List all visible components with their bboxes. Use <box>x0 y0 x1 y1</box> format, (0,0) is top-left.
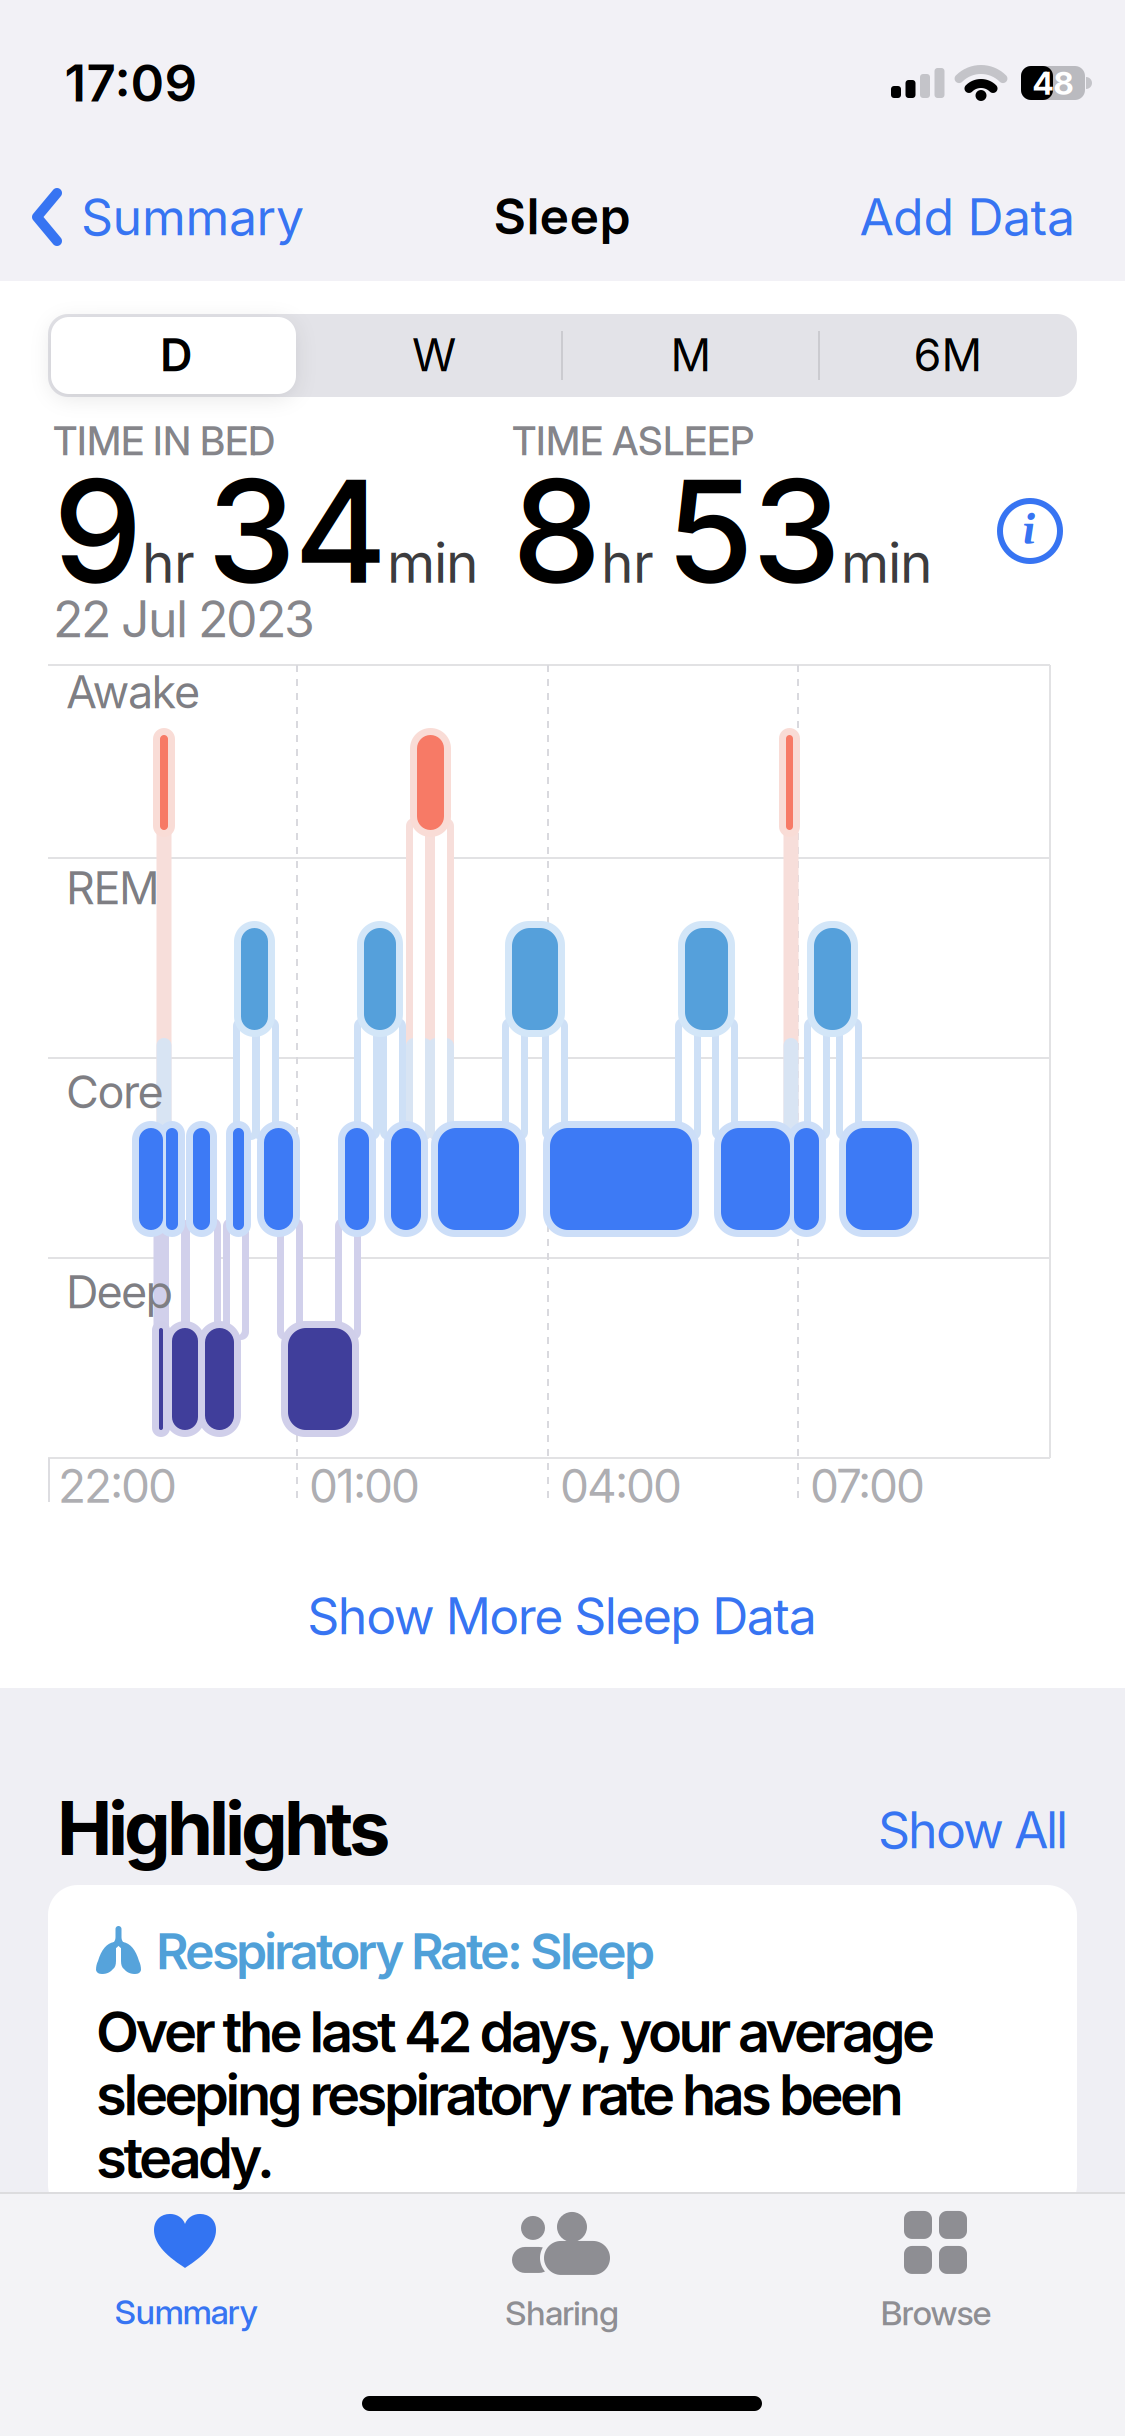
staticText: 17:09 <box>64 53 197 113</box>
staticText: 07:00 <box>810 1459 925 1513</box>
button[interactable]: Back to Summary <box>34 187 304 246</box>
staticText: min <box>841 530 932 595</box>
button[interactable]: Browse <box>786 2187 1086 2357</box>
staticText: 8 <box>512 447 601 615</box>
staticText: 22:00 <box>58 1459 177 1513</box>
staticText: Core <box>66 1065 163 1119</box>
staticText: Deep <box>66 1265 173 1319</box>
staticText: sleeping respiratory rate has been <box>96 2062 903 2128</box>
button[interactable]: Show More Sleep Data <box>307 1586 817 1645</box>
button[interactable]: M <box>566 313 816 396</box>
button[interactable]: Summary <box>36 2187 336 2357</box>
button[interactable]: About these metrics <box>997 498 1063 564</box>
staticText: 6M <box>913 328 982 382</box>
staticText: Browse <box>880 2293 991 2333</box>
staticText: 04:00 <box>560 1459 682 1513</box>
button[interactable]: Add Data <box>859 187 1075 246</box>
staticText: 34 <box>207 447 387 615</box>
staticText: Sleep <box>493 186 630 245</box>
staticText: Awake <box>66 665 200 719</box>
staticText: 9 <box>53 447 142 615</box>
staticText: W <box>412 328 456 382</box>
button[interactable]: 6M <box>823 313 1073 396</box>
staticText: 22 Jul 2023 <box>53 589 315 648</box>
staticText: min <box>387 530 478 595</box>
staticText: Over the last 42 days, your average <box>96 1999 935 2065</box>
staticText: Show More Sleep Data <box>307 1586 817 1645</box>
staticText: TIME IN BED <box>53 418 275 464</box>
staticText: Sharing <box>505 2293 619 2333</box>
staticText: TIME ASLEEP <box>512 418 754 464</box>
staticText: D <box>160 328 192 382</box>
staticText: Summary <box>114 2292 257 2332</box>
staticText: M <box>670 328 711 382</box>
staticText: i <box>1021 507 1036 557</box>
button[interactable]: W <box>309 313 559 396</box>
staticText: Summary <box>81 187 304 246</box>
staticText: 01:00 <box>309 1459 420 1513</box>
staticText: Show All <box>878 1800 1068 1859</box>
staticText: steady. <box>96 2125 275 2191</box>
button[interactable]: D <box>51 313 301 396</box>
staticText: 48 <box>1032 64 1073 102</box>
button[interactable]: Respiratory Rate: Sleep <box>48 1885 1077 2215</box>
button[interactable]: Sharing <box>412 2187 712 2357</box>
staticText: 53 <box>666 447 841 615</box>
staticText: Add Data <box>859 187 1075 246</box>
staticText: Highlights <box>57 1784 390 1872</box>
button[interactable]: Show All <box>878 1800 1068 1859</box>
staticText: hr <box>142 530 195 595</box>
staticText: hr <box>601 530 654 595</box>
staticText: Respiratory Rate: Sleep <box>156 1921 655 1980</box>
staticText: REM <box>66 861 160 915</box>
